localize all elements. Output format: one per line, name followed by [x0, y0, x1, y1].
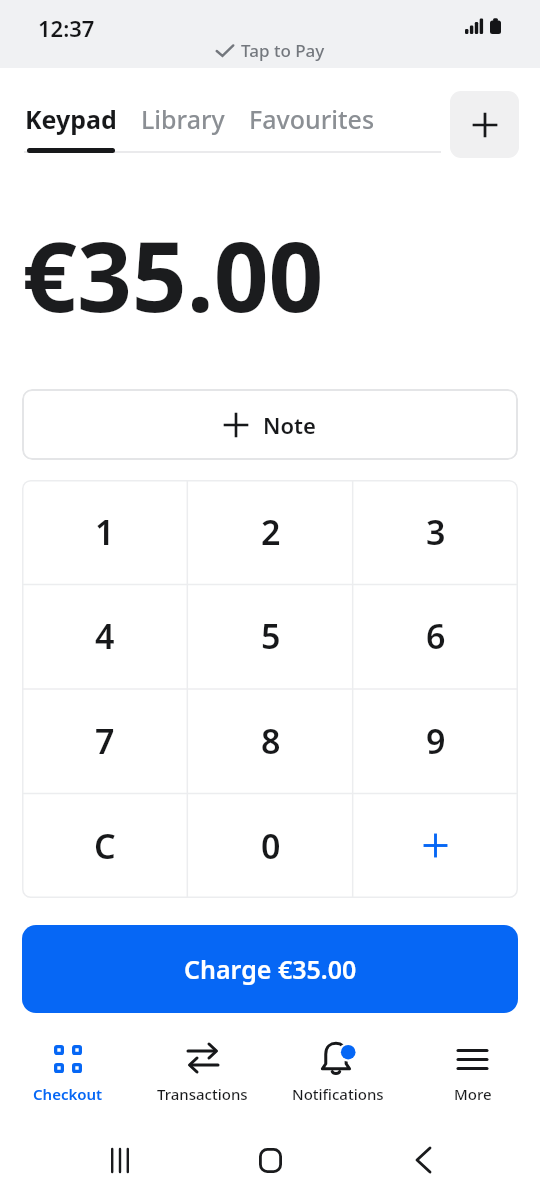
button[interactable]	[248, 1138, 292, 1182]
staticText: C	[94, 823, 116, 869]
staticText: 7	[95, 718, 115, 764]
button[interactable]: C	[22, 793, 188, 898]
button[interactable]: 3	[353, 480, 518, 584]
button[interactable]: Favourites	[249, 68, 375, 148]
button[interactable]: 8	[188, 688, 353, 793]
button[interactable]: Checkout	[0, 1042, 135, 1104]
staticText: Favourites	[249, 102, 375, 136]
button[interactable]	[353, 793, 518, 898]
button[interactable]: 0	[188, 793, 353, 898]
staticText: Transactions	[157, 1084, 248, 1104]
button[interactable]	[450, 91, 519, 158]
staticText: 2	[261, 509, 281, 555]
staticText: Charge €35.00	[184, 952, 357, 986]
button[interactable]: 6	[353, 584, 518, 688]
button[interactable]: Note	[22, 389, 518, 460]
staticText: 8	[261, 718, 281, 764]
staticText: 5	[261, 613, 281, 659]
staticText: 3	[426, 509, 446, 555]
button[interactable]: Keypad	[25, 68, 117, 153]
button[interactable]: More	[405, 1042, 540, 1104]
staticText: Tap to Pay	[241, 39, 325, 62]
staticText: More	[454, 1084, 492, 1104]
staticText: Keypad	[25, 102, 117, 136]
staticText: 12:37	[38, 13, 95, 43]
staticText: 0	[261, 823, 281, 869]
staticText: 6	[426, 613, 446, 659]
button[interactable]	[100, 1138, 140, 1182]
button[interactable]: 1	[22, 480, 188, 584]
staticText: 4	[95, 613, 115, 659]
staticText: €35.00	[22, 209, 324, 340]
button[interactable]: 5	[188, 584, 353, 688]
button[interactable]: 7	[22, 688, 188, 793]
staticText: Checkout	[33, 1084, 103, 1104]
staticText: 9	[426, 718, 446, 764]
staticText: Note	[263, 410, 316, 440]
button[interactable]: Notifications	[270, 1042, 405, 1104]
staticText: Notifications	[292, 1084, 384, 1104]
staticText: Library	[141, 102, 225, 136]
button[interactable]: Library	[141, 68, 225, 148]
button[interactable]: 9	[353, 688, 518, 793]
button[interactable]: Charge €35.00	[22, 925, 518, 1013]
button[interactable]: Transactions	[135, 1042, 270, 1104]
button[interactable]: 2	[188, 480, 353, 584]
button[interactable]: 4	[22, 584, 188, 688]
button[interactable]	[403, 1138, 443, 1182]
staticText: 1	[95, 509, 115, 555]
